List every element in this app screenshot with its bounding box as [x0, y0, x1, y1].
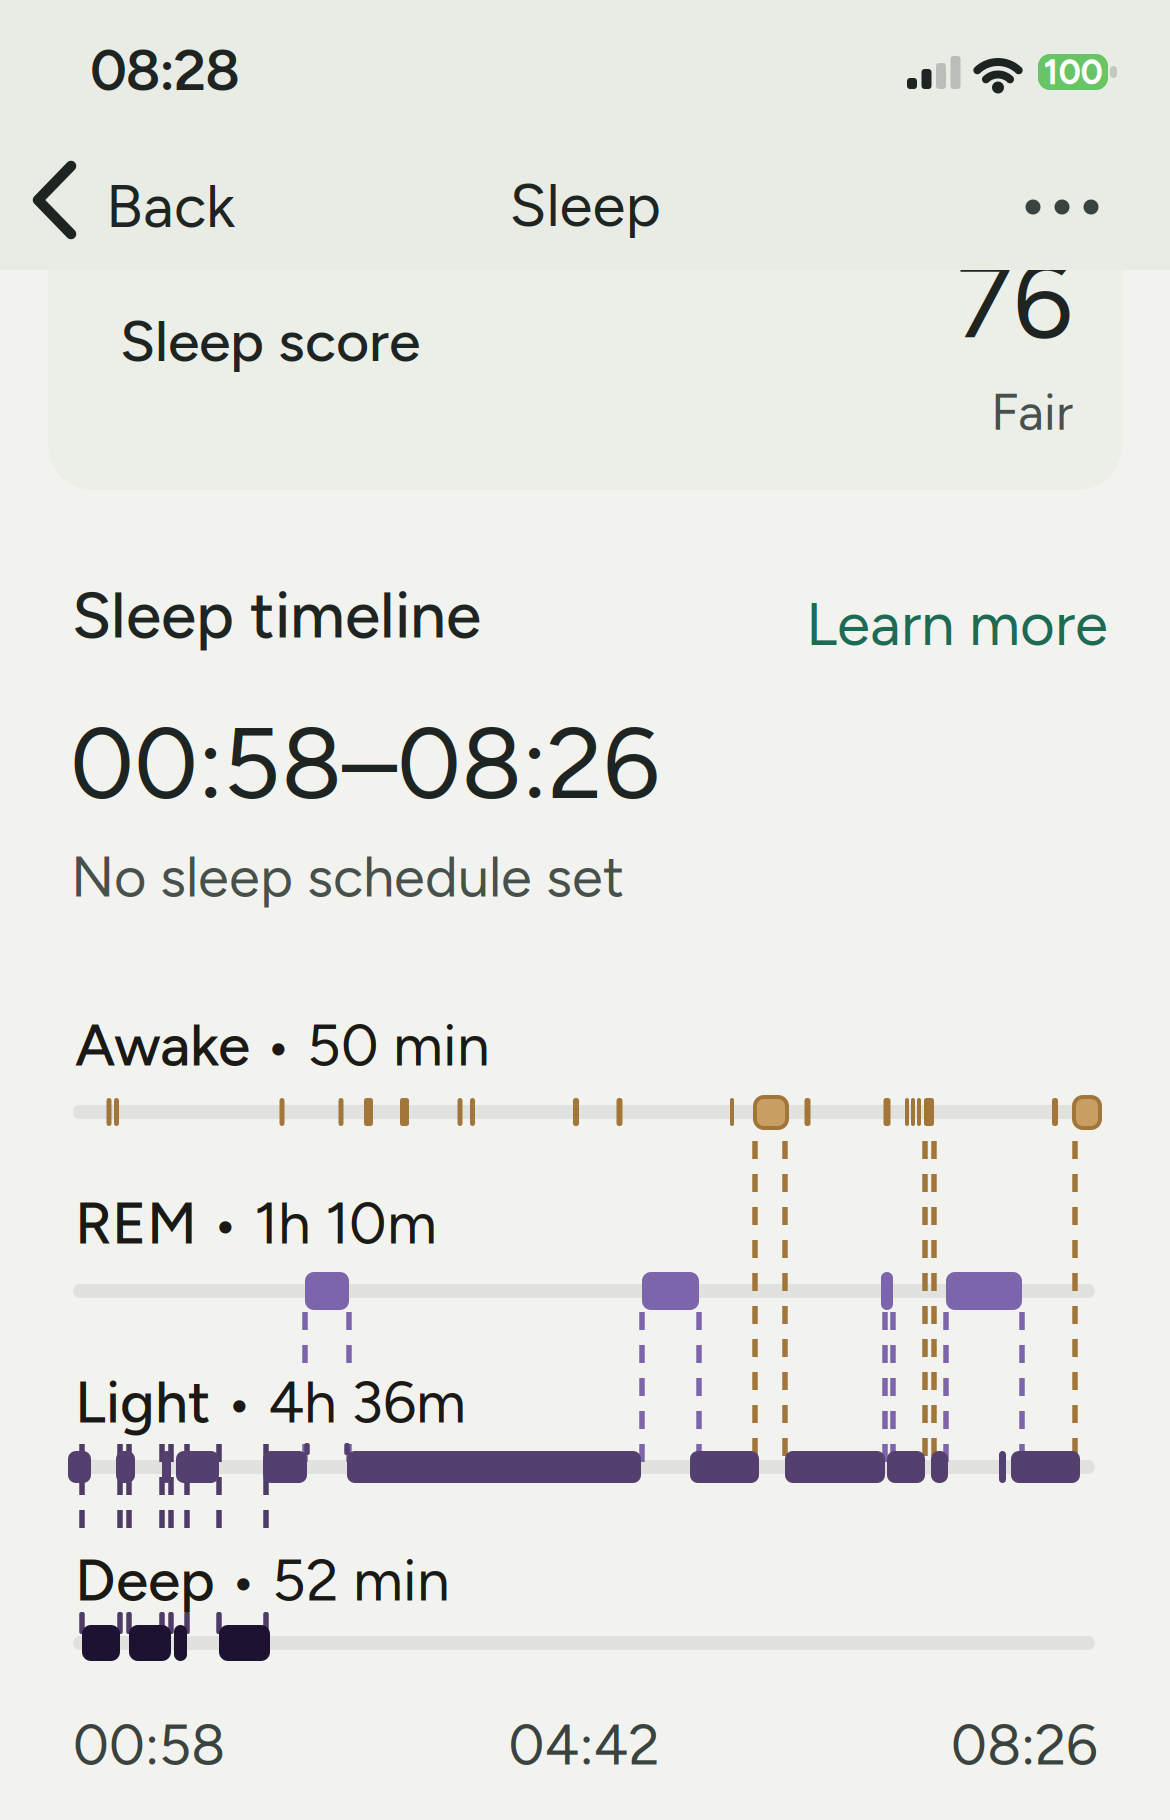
staticText: 00:58–08:26 — [70, 703, 660, 823]
staticText: Deep • 52 min — [75, 1546, 450, 1614]
staticText: 100 — [1043, 51, 1102, 93]
staticText: 76 — [956, 238, 1073, 364]
staticText: Learn more — [806, 588, 1108, 660]
staticText: REM • 1h 10m — [75, 1189, 437, 1257]
staticText: Fair — [991, 382, 1073, 442]
button[interactable]: Back — [32, 160, 235, 240]
staticText: Light • 4h 36m — [75, 1368, 466, 1436]
staticText: Sleep — [509, 169, 660, 241]
staticText: Awake • 50 min — [75, 1011, 490, 1079]
button[interactable] — [48, 208, 1122, 490]
staticText: Sleep score — [120, 307, 420, 375]
staticText: 00:58 — [73, 1711, 225, 1779]
staticText: Back — [106, 170, 235, 242]
staticText: No sleep schedule set — [71, 843, 624, 911]
staticText: 04:42 — [508, 1711, 659, 1779]
staticText: Sleep timeline — [72, 577, 481, 653]
staticText: 08:28 — [90, 36, 240, 104]
button[interactable]: Learn more — [806, 588, 1108, 660]
staticText: 08:26 — [951, 1711, 1098, 1779]
button[interactable]: More options — [1011, 185, 1112, 228]
